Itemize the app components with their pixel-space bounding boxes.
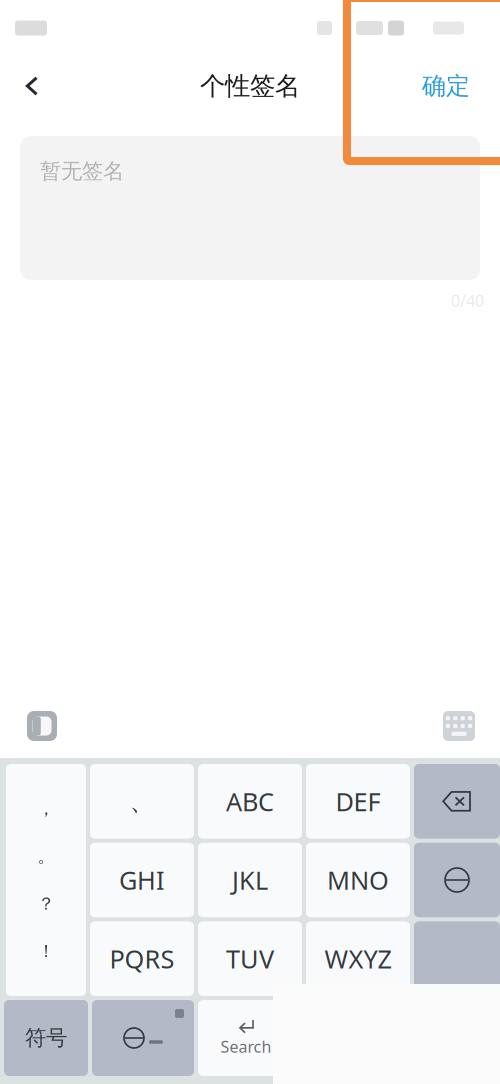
staticText: GHI	[119, 863, 165, 897]
button[interactable]: WXYZ	[306, 921, 410, 996]
staticText: DEF	[335, 784, 380, 818]
staticText: ？	[37, 893, 54, 914]
button[interactable]: Hide keyboard	[442, 709, 476, 742]
staticText: MNO	[327, 863, 389, 897]
button[interactable]: Symbols	[4, 1000, 88, 1076]
button[interactable]: Switch keyboard	[414, 843, 500, 917]
staticText: ABC	[226, 784, 274, 818]
staticText: JKL	[232, 863, 268, 897]
button[interactable]: ，	[6, 764, 86, 996]
button[interactable]: Search	[198, 1000, 294, 1076]
staticText: ！	[37, 940, 54, 962]
staticText: 符号	[25, 1025, 67, 1051]
button[interactable]: GHI	[90, 843, 194, 917]
button[interactable]: ABC	[198, 764, 302, 839]
button[interactable]: PQRS	[90, 921, 194, 996]
staticText: 0/40	[451, 290, 484, 311]
staticText: TUV	[226, 942, 274, 975]
staticText: WXYZ	[324, 942, 391, 975]
button[interactable]: Back	[0, 56, 64, 116]
staticText: Search	[220, 1036, 271, 1057]
button[interactable]: Space	[414, 921, 500, 996]
staticText: 、	[129, 786, 154, 817]
staticText: PQRS	[109, 942, 174, 975]
button[interactable]: 确定	[392, 56, 500, 116]
staticText: ，	[37, 798, 54, 819]
button[interactable]: MNO	[306, 843, 410, 917]
staticText: 暂无签名	[40, 158, 124, 184]
staticText: 个性签名	[200, 70, 300, 101]
button[interactable]: JKL	[198, 843, 302, 917]
staticText: 。	[37, 846, 54, 867]
button[interactable]: TUV	[198, 921, 302, 996]
button[interactable]: Delete	[414, 764, 500, 839]
button[interactable]: Switch input method	[25, 709, 59, 743]
button[interactable]: Change language	[92, 1000, 194, 1076]
button[interactable]: 、	[90, 764, 194, 839]
staticText: 确定	[422, 71, 470, 101]
button[interactable]: DEF	[306, 764, 410, 839]
